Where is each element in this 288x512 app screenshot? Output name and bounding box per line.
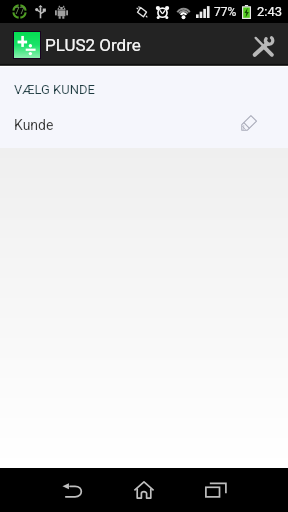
staticText: VÆLG KUNDE: [14, 82, 95, 97]
button[interactable]: Recents: [180, 468, 252, 512]
button[interactable]: Home: [108, 468, 180, 512]
staticText: 77: [14, 6, 25, 17]
button[interactable]: Back: [36, 468, 108, 512]
staticText: 77%: [214, 5, 237, 19]
button[interactable]: Kunde: [0, 107, 288, 143]
button[interactable]: [14, 32, 40, 58]
staticText: PLUS2 Ordre: [45, 35, 141, 55]
staticText: 2:43: [257, 4, 283, 19]
button[interactable]: Settings: [244, 26, 284, 66]
staticText: Kunde: [14, 117, 54, 133]
